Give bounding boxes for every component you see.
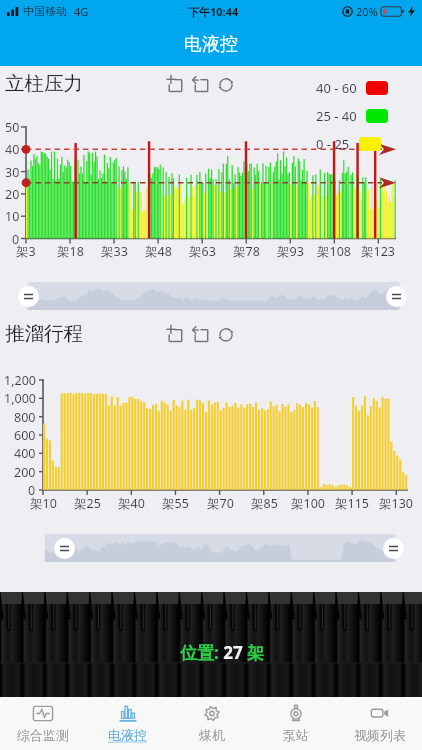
button[interactable]: Refresh: [217, 75, 235, 93]
staticText: 架18: [57, 243, 84, 260]
staticText: 10: [5, 208, 20, 225]
staticText: 架100: [291, 495, 325, 512]
staticText: 煤机: [199, 727, 225, 743]
staticText: 25 - 40: [316, 107, 357, 125]
staticText: 位置: 27 架: [180, 641, 265, 664]
staticText: 架108: [317, 243, 351, 260]
staticText: 架63: [189, 243, 216, 260]
button[interactable]: 煤机: [170, 697, 254, 750]
staticText: 架48: [145, 243, 172, 260]
staticText: 30: [5, 164, 20, 181]
staticText: 推溜行程: [5, 321, 83, 346]
staticText: 中国移动: [23, 4, 67, 18]
staticText: 架3: [16, 243, 36, 260]
staticText: 架85: [251, 495, 278, 512]
staticText: 架123: [361, 243, 395, 260]
staticText: 架130: [379, 495, 413, 512]
button[interactable]: 视频列表: [338, 697, 422, 750]
staticText: 电液控: [184, 33, 238, 56]
button[interactable]: Zoom in: [165, 74, 184, 93]
staticText: 1,200: [4, 372, 36, 389]
staticText: 1,000: [4, 390, 36, 407]
button[interactable]: 电液控: [85, 697, 170, 750]
button[interactable]: Range handle: [54, 538, 75, 559]
staticText: 架10: [30, 495, 57, 512]
staticText: 600: [14, 427, 36, 444]
button[interactable]: Zoom in: [165, 324, 184, 343]
staticText: 0: [28, 482, 36, 499]
button[interactable]: Refresh: [217, 325, 235, 343]
staticText: 20%: [356, 4, 378, 19]
button[interactable]: Undo: [191, 74, 210, 93]
staticText: 800: [14, 409, 36, 426]
staticText: 0 - 25: [316, 135, 350, 153]
staticText: 架33: [101, 243, 128, 260]
staticText: 架78: [233, 243, 260, 260]
staticText: 架93: [277, 243, 304, 260]
button[interactable]: Undo: [191, 324, 210, 343]
staticText: 视频列表: [354, 727, 406, 743]
staticText: 40: [5, 141, 20, 158]
staticText: 50: [5, 119, 20, 136]
staticText: 电液控: [108, 727, 147, 743]
staticText: 架55: [162, 495, 189, 512]
staticText: 下午10:44: [188, 4, 239, 19]
staticText: 40 - 60: [316, 79, 357, 97]
staticText: 架115: [335, 495, 369, 512]
staticText: 架70: [207, 495, 234, 512]
button[interactable]: Range handle: [383, 538, 404, 559]
staticText: 架25: [74, 495, 101, 512]
staticText: 架40: [118, 495, 145, 512]
button[interactable]: Range handle: [386, 286, 407, 307]
staticText: 综合监测: [17, 727, 69, 743]
staticText: 20: [5, 186, 20, 203]
staticText: 0: [12, 231, 20, 248]
staticText: 200: [14, 464, 36, 481]
staticText: 立柱压力: [5, 71, 83, 96]
button[interactable]: Range handle: [18, 286, 39, 307]
staticText: 400: [14, 445, 36, 462]
staticText: 4G: [74, 4, 89, 19]
button[interactable]: 泵站: [254, 697, 338, 750]
button[interactable]: 综合监测: [0, 697, 85, 750]
staticText: 泵站: [283, 727, 309, 743]
